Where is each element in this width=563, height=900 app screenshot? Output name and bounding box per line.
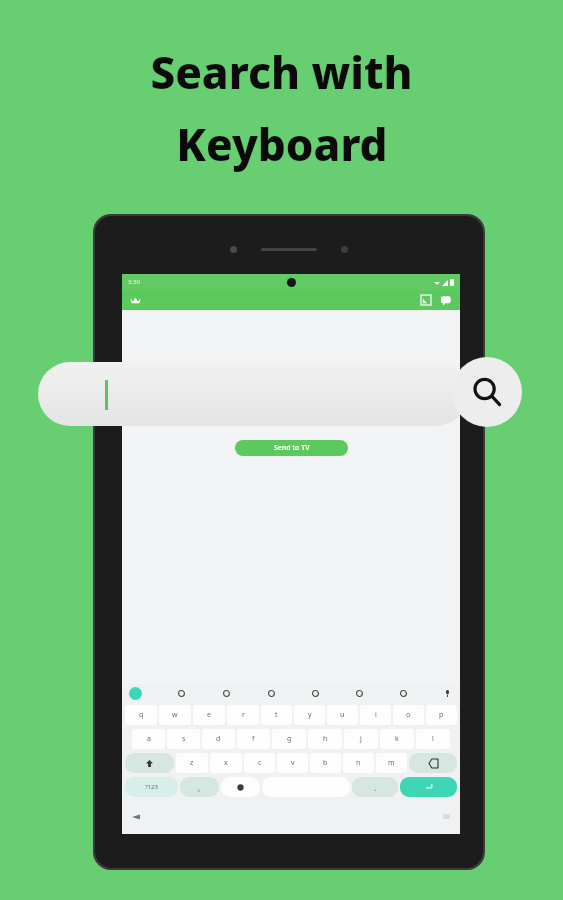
button[interactable]: m xyxy=(376,753,407,773)
staticText: w xyxy=(172,710,178,720)
staticText: x xyxy=(224,758,228,768)
button[interactable]: Shift xyxy=(125,753,174,773)
button[interactable]: Search xyxy=(452,357,522,427)
staticText: g xyxy=(287,734,292,744)
button[interactable]: Comma xyxy=(180,777,219,797)
button[interactable]: Toolbar item xyxy=(354,688,365,699)
button[interactable]: p xyxy=(426,705,457,725)
button[interactable]: Cast xyxy=(418,292,434,308)
staticText: i xyxy=(375,710,377,720)
button[interactable]: h xyxy=(308,729,342,749)
staticText: p xyxy=(439,710,444,720)
button[interactable]: k xyxy=(380,729,414,749)
button[interactable]: Toolbar item xyxy=(266,688,277,699)
button[interactable]: Symbols xyxy=(125,777,178,797)
button[interactable]: Toolbar item xyxy=(310,688,321,699)
button[interactable]: e xyxy=(193,705,225,725)
staticText: Search with xyxy=(150,42,413,102)
button[interactable]: Language xyxy=(221,777,260,797)
button[interactable]: s xyxy=(167,729,200,749)
button[interactable]: o xyxy=(393,705,424,725)
button[interactable]: a xyxy=(132,729,165,749)
staticText: y xyxy=(308,710,312,720)
staticText: Keyboard xyxy=(176,114,388,174)
staticText: o xyxy=(406,710,411,720)
button[interactable]: Toolbar item xyxy=(398,688,409,699)
staticText: n xyxy=(356,758,361,768)
button[interactable]: Voice input xyxy=(442,688,453,699)
button[interactable]: x xyxy=(210,753,242,773)
button[interactable]: Send to TV xyxy=(235,440,348,456)
button[interactable]: v xyxy=(277,753,308,773)
staticText: . xyxy=(374,782,377,793)
button[interactable]: u xyxy=(327,705,358,725)
staticText: f xyxy=(252,734,255,744)
staticText: a xyxy=(147,734,151,744)
staticText: h xyxy=(323,734,328,744)
staticText: 3:30 xyxy=(128,278,140,286)
staticText: q xyxy=(139,710,144,720)
staticText: Send to TV xyxy=(274,443,310,453)
staticText: t xyxy=(275,710,278,720)
staticText: v xyxy=(291,758,295,768)
button[interactable]: r xyxy=(227,705,259,725)
staticText: , xyxy=(198,782,201,793)
button[interactable]: q xyxy=(125,705,157,725)
staticText: l xyxy=(432,734,434,744)
staticText: r xyxy=(242,710,245,720)
button[interactable]: Messages xyxy=(438,292,454,308)
button[interactable]: y xyxy=(294,705,325,725)
staticText: e xyxy=(207,710,211,720)
button[interactable]: Backspace xyxy=(409,753,457,773)
button[interactable]: n xyxy=(343,753,374,773)
button[interactable]: c xyxy=(244,753,275,773)
button[interactable]: z xyxy=(176,753,208,773)
staticText: ?123 xyxy=(145,783,158,791)
button[interactable]: Period xyxy=(352,777,398,797)
staticText: b xyxy=(323,758,328,768)
button[interactable]: t xyxy=(261,705,292,725)
button[interactable]: j xyxy=(344,729,378,749)
button[interactable]: g xyxy=(272,729,306,749)
button[interactable]: w xyxy=(159,705,191,725)
button[interactable]: Menu xyxy=(128,293,142,307)
button[interactable]: Keyboard menu xyxy=(129,687,142,700)
button[interactable]: b xyxy=(310,753,341,773)
staticText: s xyxy=(182,734,186,744)
button[interactable]: l xyxy=(416,729,450,749)
staticText: k xyxy=(395,734,399,744)
staticText: d xyxy=(216,734,221,744)
staticText: u xyxy=(340,710,345,720)
staticText: z xyxy=(190,758,194,768)
button[interactable]: d xyxy=(202,729,235,749)
staticText: m xyxy=(388,758,395,768)
button[interactable]: Enter xyxy=(400,777,457,797)
button[interactable]: f xyxy=(237,729,270,749)
staticText: j xyxy=(360,734,362,744)
button[interactable]: Toolbar item xyxy=(221,688,232,699)
button[interactable]: Toolbar item xyxy=(176,688,187,699)
button[interactable] xyxy=(38,362,468,426)
staticText: c xyxy=(258,758,262,768)
button[interactable]: i xyxy=(360,705,391,725)
